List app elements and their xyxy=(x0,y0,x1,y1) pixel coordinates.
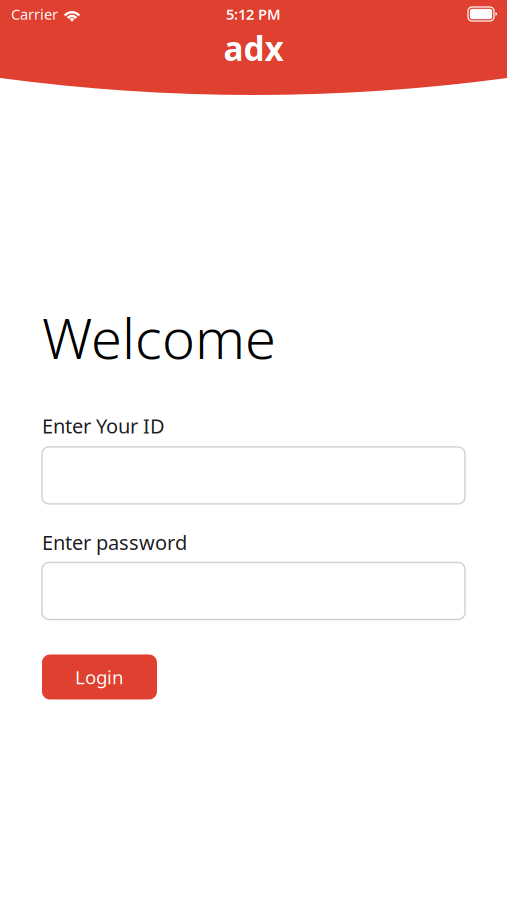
staticText: 5:12 PM xyxy=(226,4,281,24)
staticText: Welcome xyxy=(42,300,276,374)
staticText: Enter password xyxy=(42,529,187,555)
staticText: adx xyxy=(223,26,283,70)
staticText: Enter Your ID xyxy=(42,412,165,439)
button[interactable]: Enter Your ID xyxy=(42,447,465,504)
button[interactable]: Enter password xyxy=(42,562,465,619)
button[interactable]: Login xyxy=(42,654,157,699)
staticText: Login xyxy=(75,665,124,689)
staticText: Carrier xyxy=(11,4,58,24)
